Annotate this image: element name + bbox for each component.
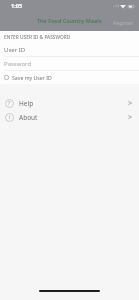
staticText: Register	[113, 19, 134, 26]
staticText: About	[19, 113, 38, 122]
button[interactable]: Save my User ID	[0, 71, 139, 84]
staticText: Save my User ID	[12, 74, 52, 81]
staticText: Help	[19, 99, 34, 108]
staticText: The Food Country Meals	[37, 17, 102, 24]
staticText: 1:05	[11, 2, 23, 10]
button[interactable]: Register	[113, 19, 134, 26]
staticText: User ID	[4, 46, 26, 54]
button[interactable]: User ID	[0, 43, 139, 56]
staticText: ?	[8, 100, 11, 107]
staticText: i	[9, 114, 11, 121]
button[interactable]: Password	[0, 57, 139, 70]
button[interactable]: ?	[0, 96, 139, 110]
staticText: Password	[4, 60, 32, 68]
button[interactable]: i	[0, 110, 139, 124]
staticText: ENTER USER ID & PASSWORD	[4, 34, 71, 41]
